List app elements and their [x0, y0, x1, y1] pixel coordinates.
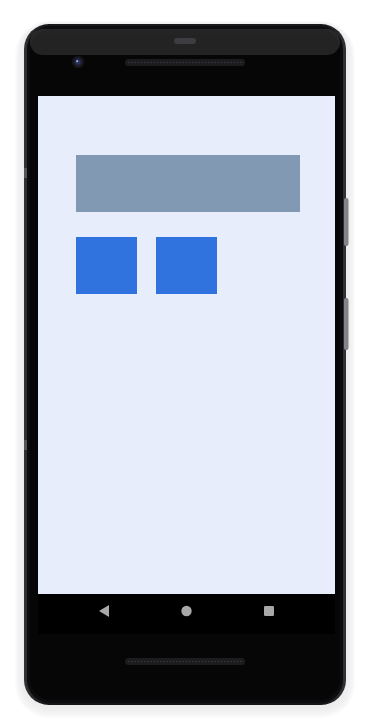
button[interactable]: Recent apps	[245, 594, 293, 628]
button[interactable]: Home	[162, 594, 210, 628]
button[interactable]: Back	[80, 594, 128, 628]
